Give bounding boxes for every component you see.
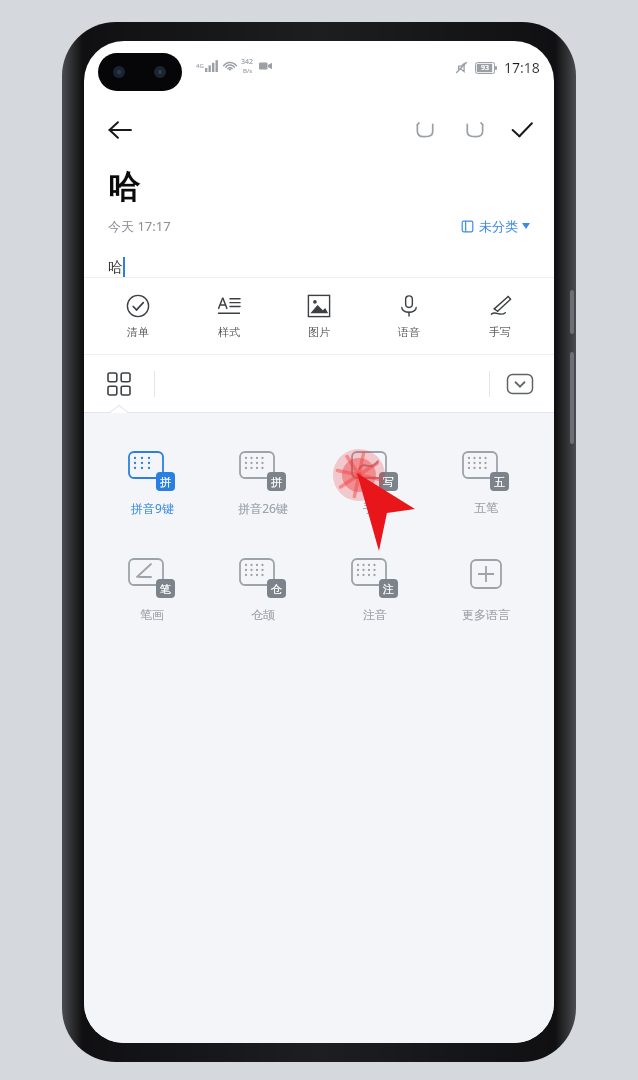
button[interactable]: 注 <box>332 558 418 622</box>
staticText: B/s <box>243 67 253 75</box>
staticText: 342 <box>241 57 254 67</box>
staticText: 样式 <box>218 325 240 339</box>
button[interactable]: 笔 <box>109 558 195 622</box>
button[interactable]: Redo <box>450 106 498 154</box>
button[interactable]: 更多语言 <box>443 558 529 622</box>
button[interactable]: 拼 <box>109 451 195 516</box>
button[interactable]: 手写 <box>464 294 536 339</box>
staticText: 清单 <box>127 325 149 339</box>
staticText: 手写 <box>363 500 387 515</box>
button[interactable]: Undo <box>402 106 450 154</box>
staticText: 五笔 <box>474 500 498 515</box>
staticText: 拼音26键 <box>238 500 288 516</box>
button[interactable]: Back <box>96 106 144 154</box>
staticText: 手写 <box>489 325 511 339</box>
staticText: 仓 <box>271 582 282 596</box>
button[interactable]: Hide keyboard <box>498 362 542 406</box>
staticText: 笔画 <box>140 607 164 622</box>
staticText: 93 <box>481 63 490 73</box>
button[interactable]: 仓 <box>220 558 306 622</box>
staticText: 图片 <box>308 325 330 339</box>
staticText: 写 <box>383 475 394 489</box>
button[interactable]: 图片 <box>283 294 355 339</box>
staticText: 17:18 <box>504 58 540 77</box>
button[interactable]: 写 <box>332 451 418 515</box>
staticText: 注 <box>383 582 394 596</box>
staticText: 仓颉 <box>251 607 275 622</box>
staticText: 今天 17:17 <box>108 217 171 235</box>
button[interactable]: 五 <box>443 451 529 515</box>
staticText: 笔 <box>160 582 171 596</box>
staticText: 语音 <box>398 325 420 339</box>
staticText: 拼音9键 <box>131 500 174 516</box>
button[interactable]: 语音 <box>373 294 445 339</box>
staticText: 哈 <box>108 258 123 277</box>
button[interactable]: Done <box>498 106 546 154</box>
staticText: 4G <box>196 62 204 70</box>
staticText: 未分类 <box>479 218 518 234</box>
button[interactable]: 未分类 <box>461 218 530 234</box>
staticText: 拼 <box>271 475 282 489</box>
staticText: 五 <box>494 475 505 489</box>
button[interactable]: 清单 <box>102 294 174 339</box>
button[interactable]: 拼 <box>220 451 306 516</box>
staticText: 拼 <box>160 475 171 489</box>
button[interactable]: Input methods <box>96 361 142 407</box>
button[interactable]: 样式 <box>193 294 265 339</box>
staticText: 哈 <box>108 167 140 207</box>
staticText: 更多语言 <box>462 607 510 622</box>
staticText: 注音 <box>363 607 387 622</box>
